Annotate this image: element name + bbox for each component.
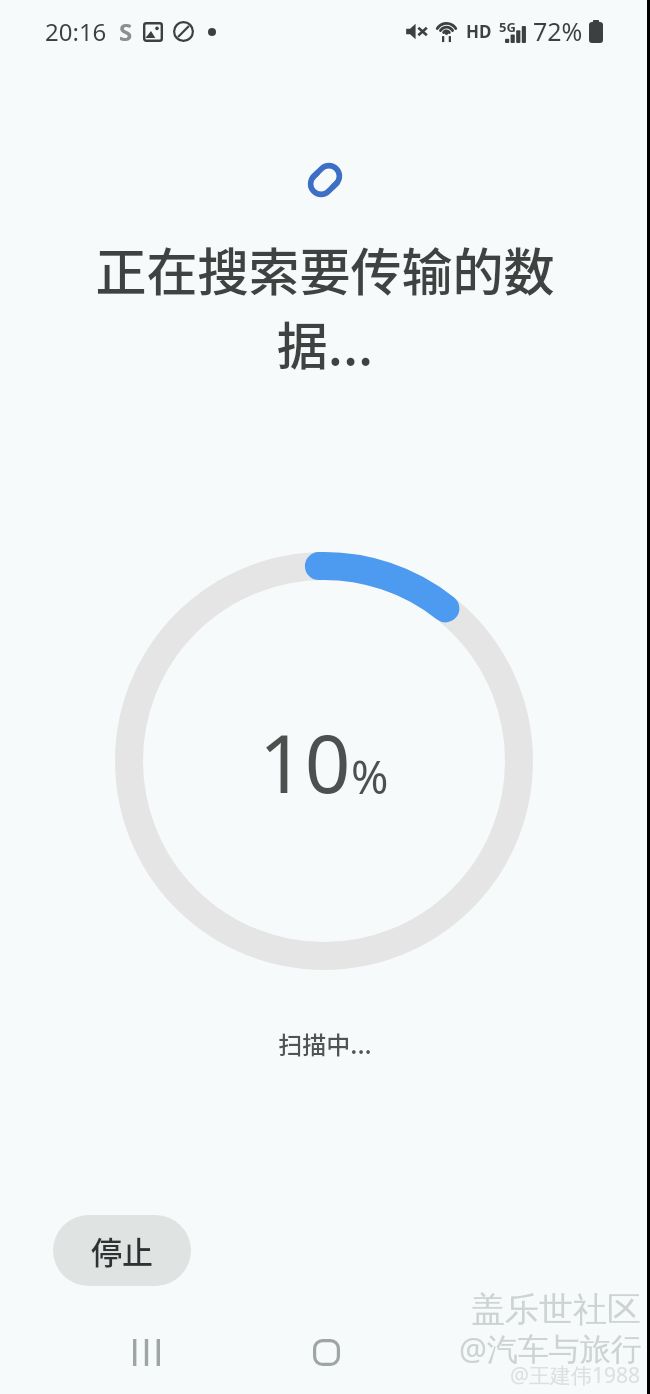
staticText: 72% xyxy=(533,14,583,48)
button[interactable]: Home xyxy=(253,1314,399,1390)
staticText: @王建伟1988 xyxy=(510,1361,640,1390)
button[interactable]: 停止 xyxy=(53,1215,191,1286)
staticText: S xyxy=(119,15,133,48)
staticText: 5G xyxy=(499,18,516,36)
staticText: 20:16 xyxy=(45,15,107,48)
staticText: @汽车与旅行 xyxy=(459,1327,642,1369)
staticText: 盖乐世社区 xyxy=(471,1288,641,1331)
button[interactable]: Back xyxy=(433,1314,579,1390)
staticText: % xyxy=(351,746,389,807)
button[interactable]: Recents xyxy=(73,1314,219,1390)
staticText: 停止 xyxy=(91,1228,153,1273)
staticText: 扫描中... xyxy=(278,1026,372,1061)
staticText: 10 xyxy=(259,707,351,816)
staticText: HD xyxy=(466,20,492,43)
staticText: 正在搜索要传输的数据... xyxy=(66,232,584,380)
